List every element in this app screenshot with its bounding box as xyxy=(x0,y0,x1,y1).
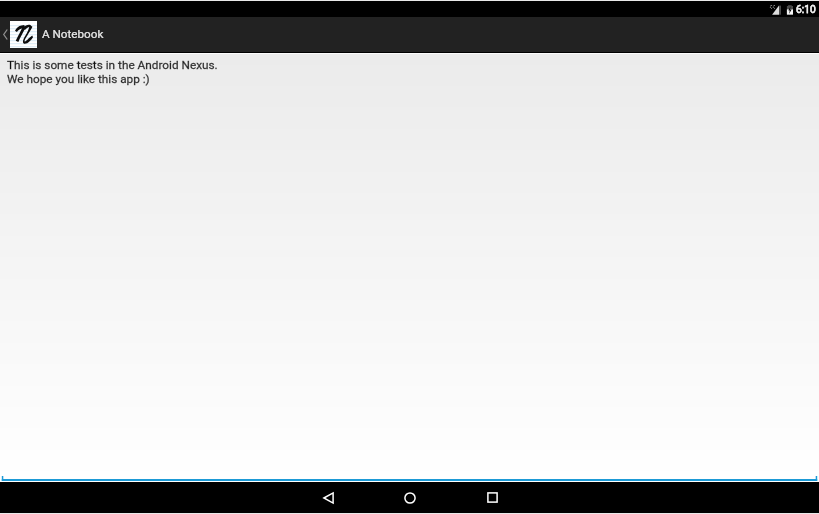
button[interactable]: Back xyxy=(287,482,369,513)
staticText: 6:10 xyxy=(796,4,816,16)
staticText: A Notebook xyxy=(42,27,104,41)
button[interactable]: This is some tests in the Android Nexus.… xyxy=(0,54,819,482)
button[interactable]: Recent apps xyxy=(451,482,533,513)
staticText: This is some tests in the Android Nexus.… xyxy=(7,58,218,86)
button[interactable]: Home xyxy=(369,482,451,513)
other: Navigate up xyxy=(3,29,8,40)
staticText: This is some tests in the Android Nexus.… xyxy=(7,58,218,86)
staticText: 6:10 xyxy=(796,4,816,16)
button[interactable]: Navigate up xyxy=(0,17,114,52)
